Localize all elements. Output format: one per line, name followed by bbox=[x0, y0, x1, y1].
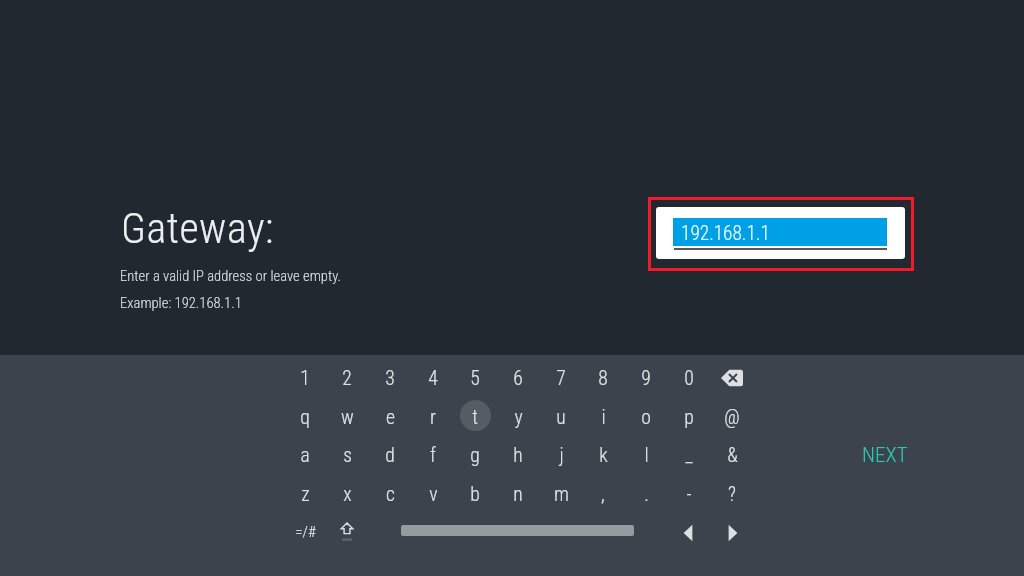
button[interactable]: 7 bbox=[540, 359, 582, 397]
button[interactable]: Move cursor right bbox=[717, 517, 749, 549]
button[interactable]: 4 bbox=[412, 359, 454, 397]
button[interactable]: v bbox=[412, 475, 454, 513]
staticText: b bbox=[470, 483, 480, 506]
staticText: j bbox=[559, 444, 564, 467]
button[interactable]: 6 bbox=[497, 359, 539, 397]
button[interactable]: n bbox=[497, 475, 539, 513]
staticText: @ bbox=[724, 406, 740, 429]
button[interactable]: c bbox=[369, 475, 411, 513]
staticText: 3 bbox=[385, 367, 395, 390]
button[interactable]: a bbox=[284, 436, 326, 474]
staticText: Gateway: bbox=[121, 204, 275, 253]
button[interactable]: 5 bbox=[454, 359, 496, 397]
staticText: x bbox=[343, 483, 352, 506]
button[interactable]: Gateway IP address input bbox=[651, 200, 911, 268]
button[interactable]: z bbox=[284, 475, 326, 513]
button[interactable]: o bbox=[625, 398, 667, 436]
button[interactable]: NEXT bbox=[850, 436, 920, 474]
staticText: m bbox=[554, 483, 569, 506]
button[interactable]: - bbox=[668, 475, 710, 513]
button[interactable]: & bbox=[711, 436, 753, 474]
staticText: 4 bbox=[428, 367, 438, 390]
button[interactable]: 2 bbox=[326, 359, 368, 397]
staticText: q bbox=[300, 406, 310, 429]
staticText: Enter a valid IP address or leave empty. bbox=[120, 267, 341, 284]
staticText: 8 bbox=[598, 367, 608, 390]
button[interactable]: l bbox=[625, 436, 667, 474]
staticText: g bbox=[470, 444, 480, 467]
button[interactable]: @ bbox=[711, 398, 753, 436]
button[interactable]: x bbox=[326, 475, 368, 513]
button[interactable]: m bbox=[540, 475, 582, 513]
staticText: 0 bbox=[684, 367, 694, 390]
button[interactable]: =/# bbox=[284, 513, 326, 551]
button[interactable]: Backspace bbox=[716, 362, 748, 394]
staticText: NEXT bbox=[862, 443, 908, 468]
staticText: p bbox=[684, 406, 694, 429]
button[interactable]: Move cursor left bbox=[672, 517, 704, 549]
staticText: a bbox=[300, 444, 310, 467]
button[interactable]: 8 bbox=[582, 359, 624, 397]
staticText: - bbox=[686, 483, 692, 506]
button[interactable]: b bbox=[454, 475, 496, 513]
staticText: h bbox=[513, 444, 523, 467]
staticText: f bbox=[430, 444, 436, 467]
button[interactable]: r bbox=[412, 398, 454, 436]
staticText: 5 bbox=[470, 367, 480, 390]
staticText: 192.168.1.1 bbox=[681, 222, 770, 245]
button[interactable]: , bbox=[582, 475, 624, 513]
staticText: t bbox=[472, 406, 478, 429]
staticText: v bbox=[429, 483, 438, 506]
staticText: r bbox=[430, 406, 436, 429]
button[interactable]: 1 bbox=[284, 359, 326, 397]
button[interactable]: s bbox=[326, 436, 368, 474]
staticText: _ bbox=[685, 444, 693, 467]
button[interactable]: p bbox=[668, 398, 710, 436]
staticText: n bbox=[513, 483, 523, 506]
button[interactable]: f bbox=[412, 436, 454, 474]
button[interactable]: 3 bbox=[369, 359, 411, 397]
staticText: z bbox=[301, 483, 310, 506]
staticText: 9 bbox=[641, 367, 651, 390]
button[interactable]: j bbox=[540, 436, 582, 474]
staticText: u bbox=[556, 406, 566, 429]
button[interactable]: h bbox=[497, 436, 539, 474]
button[interactable]: Shift bbox=[331, 516, 363, 548]
button[interactable]: e bbox=[369, 398, 411, 436]
staticText: & bbox=[727, 444, 738, 467]
button[interactable]: 0 bbox=[668, 359, 710, 397]
staticText: 1 bbox=[300, 367, 310, 390]
button[interactable]: . bbox=[625, 475, 667, 513]
staticText: , bbox=[601, 483, 605, 506]
staticText: =/# bbox=[295, 523, 316, 541]
button[interactable]: _ bbox=[668, 436, 710, 474]
button[interactable]: y bbox=[497, 398, 539, 436]
button[interactable]: i bbox=[582, 398, 624, 436]
button[interactable]: d bbox=[369, 436, 411, 474]
staticText: c bbox=[386, 483, 395, 506]
button[interactable]: w bbox=[326, 398, 368, 436]
staticText: y bbox=[514, 406, 523, 429]
staticText: i bbox=[601, 406, 606, 429]
staticText: . bbox=[644, 483, 649, 506]
button[interactable]: g bbox=[454, 436, 496, 474]
staticText: d bbox=[385, 444, 395, 467]
button[interactable]: q bbox=[284, 398, 326, 436]
staticText: 6 bbox=[513, 367, 523, 390]
button[interactable]: ? bbox=[711, 475, 753, 513]
button[interactable]: Space bbox=[401, 515, 634, 546]
staticText: k bbox=[599, 444, 608, 467]
staticText: Example: 192.168.1.1 bbox=[120, 294, 242, 311]
staticText: w bbox=[341, 406, 354, 429]
staticText: o bbox=[641, 406, 651, 429]
button[interactable]: 9 bbox=[625, 359, 667, 397]
staticText: ? bbox=[728, 483, 736, 506]
button[interactable]: k bbox=[582, 436, 624, 474]
staticText: l bbox=[644, 444, 649, 467]
button[interactable]: u bbox=[540, 398, 582, 436]
staticText: 7 bbox=[556, 367, 566, 390]
staticText: 2 bbox=[342, 367, 352, 390]
staticText: s bbox=[343, 444, 352, 467]
button[interactable]: t bbox=[454, 398, 496, 436]
staticText: e bbox=[386, 406, 395, 429]
